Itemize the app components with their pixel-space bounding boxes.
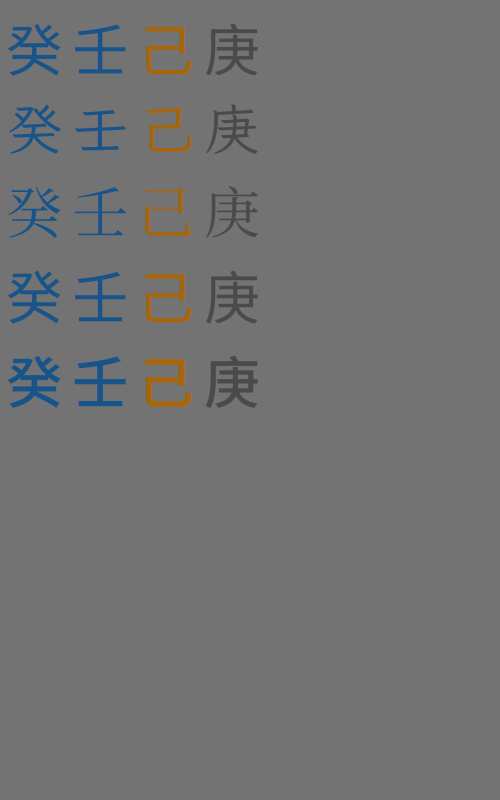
staticText: 庚 <box>204 91 260 165</box>
staticText: 癸 <box>6 253 62 334</box>
staticText: 己 <box>138 6 194 87</box>
staticText: 癸 <box>6 91 62 165</box>
staticText: 壬 <box>72 169 128 249</box>
staticText: 己 <box>138 253 194 334</box>
staticText: 壬 <box>72 338 128 419</box>
staticText: 癸 <box>6 338 62 419</box>
staticText: 壬 <box>72 91 128 165</box>
staticText: 壬 <box>72 253 128 334</box>
staticText: 己 <box>138 91 194 165</box>
staticText: 庚 <box>204 253 260 334</box>
staticText: 庚 <box>204 6 260 87</box>
staticText: 庚 <box>204 169 260 249</box>
staticText: 癸 <box>6 169 62 249</box>
staticText: 癸 <box>6 6 62 87</box>
staticText: 壬 <box>72 6 128 87</box>
staticText: 己 <box>138 169 194 249</box>
staticText: 庚 <box>204 338 260 419</box>
staticText: 己 <box>138 338 194 419</box>
